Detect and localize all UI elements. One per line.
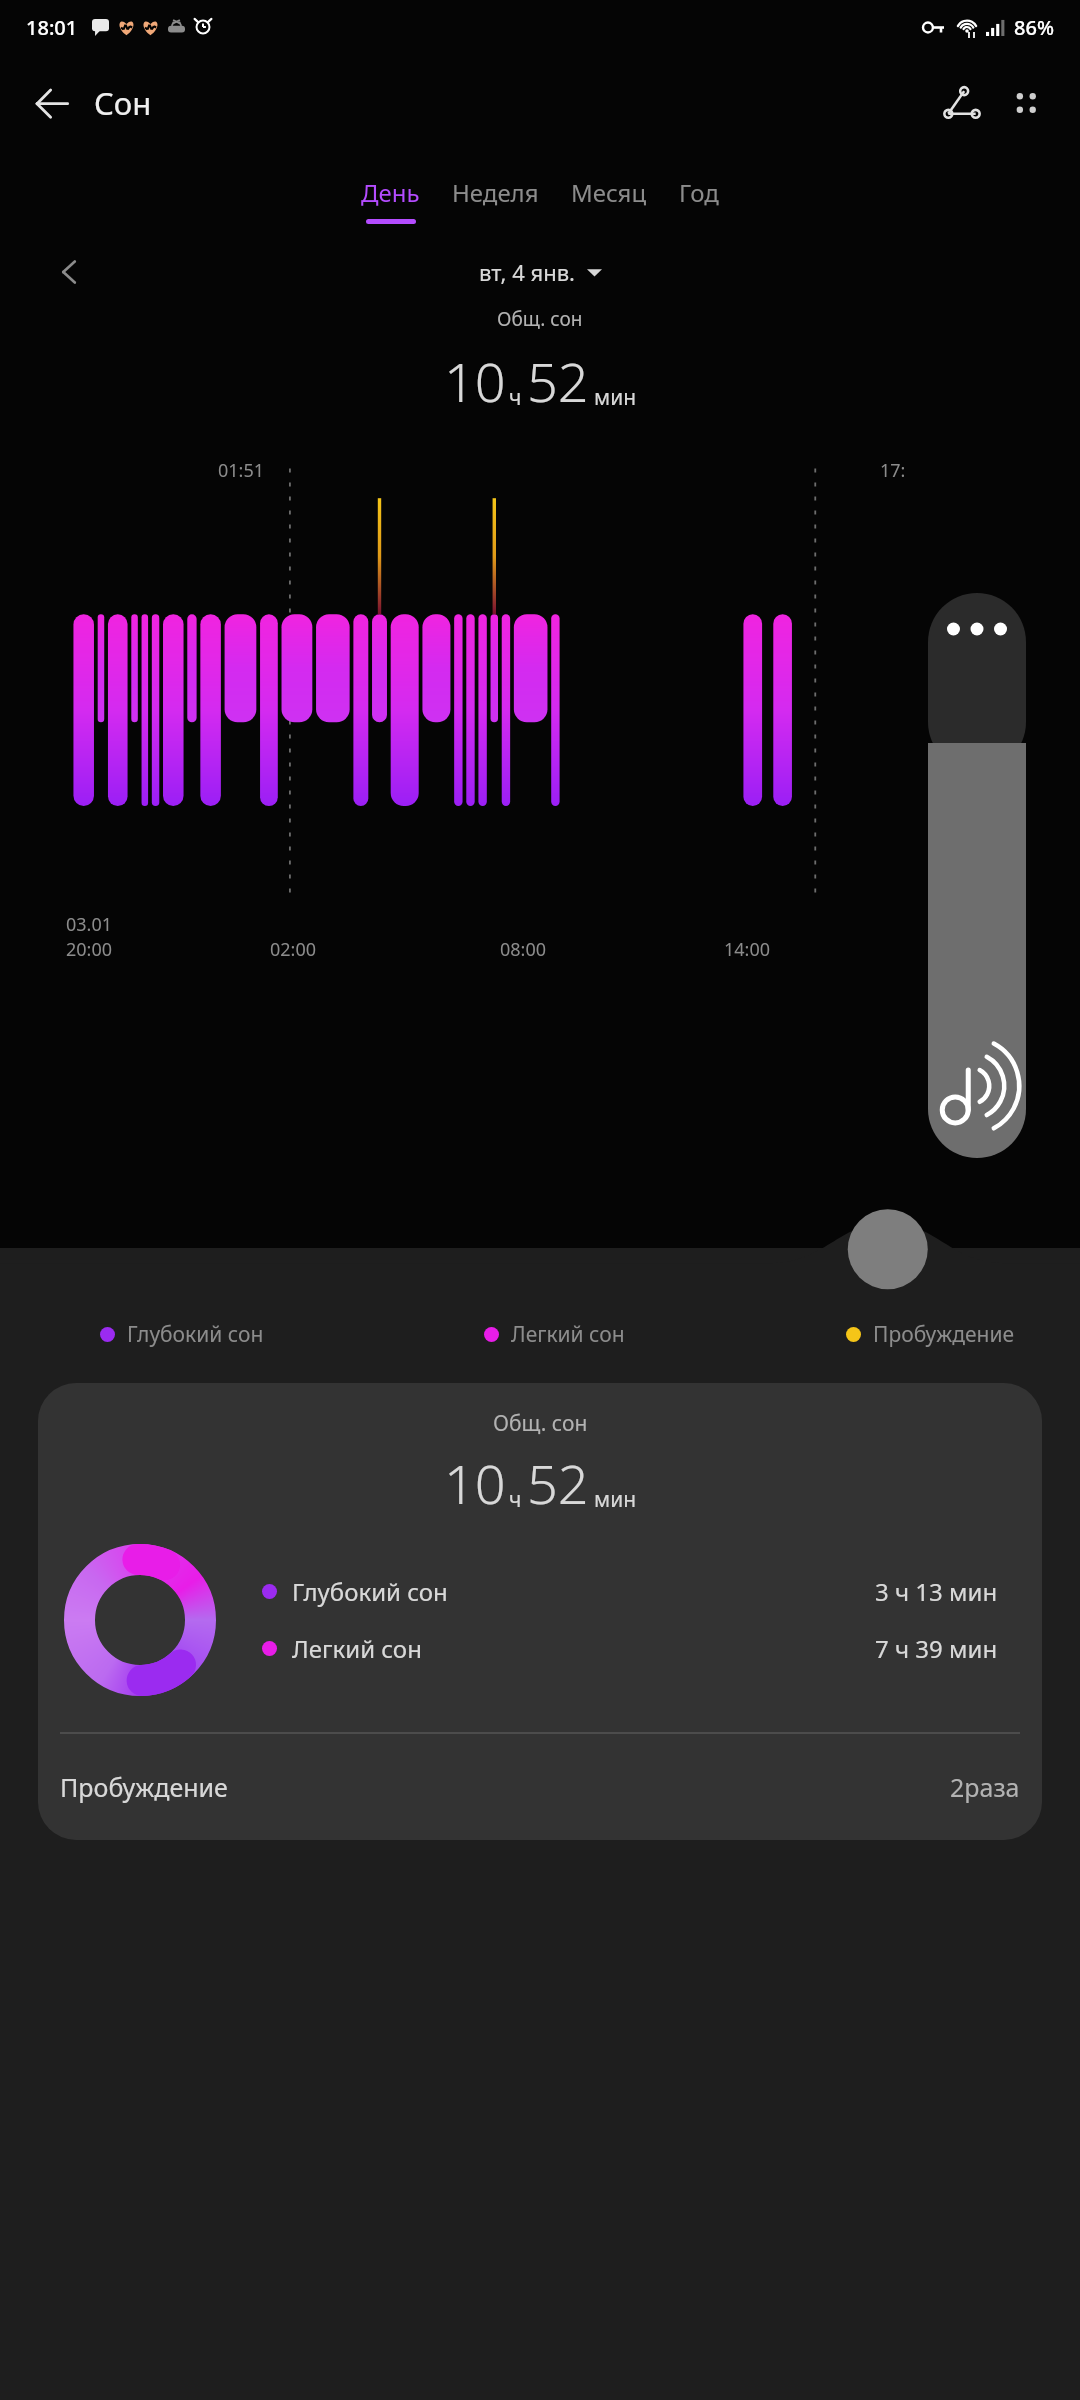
button[interactable]: Громкость [928,743,1026,1158]
staticText: 20:00 [66,937,113,962]
staticText: Сон [94,82,152,124]
staticText: Год [679,176,719,209]
button[interactable]: Ещё [994,71,1058,135]
button[interactable]: Предыдущий день [44,246,96,298]
staticText: Общ. сон [493,1409,588,1438]
button[interactable]: Неделя [436,174,555,226]
staticText: 52 [527,344,589,418]
staticText: 08:00 [500,937,547,962]
button[interactable]: Год [663,174,735,226]
staticText: Глубокий сон [127,1320,264,1349]
staticText: Легкий сон [511,1320,625,1349]
staticText: 01:51 [218,458,265,483]
staticText: Глубокий сон [292,1575,448,1608]
staticText: 02:00 [270,937,317,962]
staticText: 14:00 [724,937,771,962]
button[interactable]: Общ. сон [38,1383,1042,1840]
staticText: Неделя [452,176,539,209]
staticText: День [361,176,420,209]
button[interactable]: Месяц [555,174,663,226]
staticText: Пробуждение [873,1320,1014,1349]
button[interactable]: Меню панели [928,593,1026,771]
staticText: 10 [444,344,506,418]
staticText: 17: [880,458,906,483]
staticText: ч [509,1485,522,1514]
staticText: ч [509,383,522,412]
staticText: 3 ч 13 мин [875,1575,998,1608]
staticText: Пробуждение [60,1770,228,1804]
staticText: 7 ч 39 мин [875,1632,998,1665]
button[interactable]: Назад [22,73,82,133]
button[interactable]: День [345,174,436,226]
staticText: Месяц [571,176,647,209]
staticText: мин [594,383,637,412]
staticText: мин [594,1485,637,1514]
staticText: 2раза [950,1770,1020,1804]
staticText: Общ. сон [497,306,583,332]
staticText: Легкий сон [292,1632,422,1665]
button[interactable]: Поделиться [930,71,994,135]
staticText: вт, 4 янв. [479,257,575,287]
staticText: 86% [1014,14,1054,41]
staticText: 52 [527,1446,589,1520]
staticText: 18:01 [26,14,78,41]
button[interactable]: вт, 4 янв. [469,251,612,293]
staticText: 03.01 [66,912,113,937]
staticText: 10 [444,1446,506,1520]
